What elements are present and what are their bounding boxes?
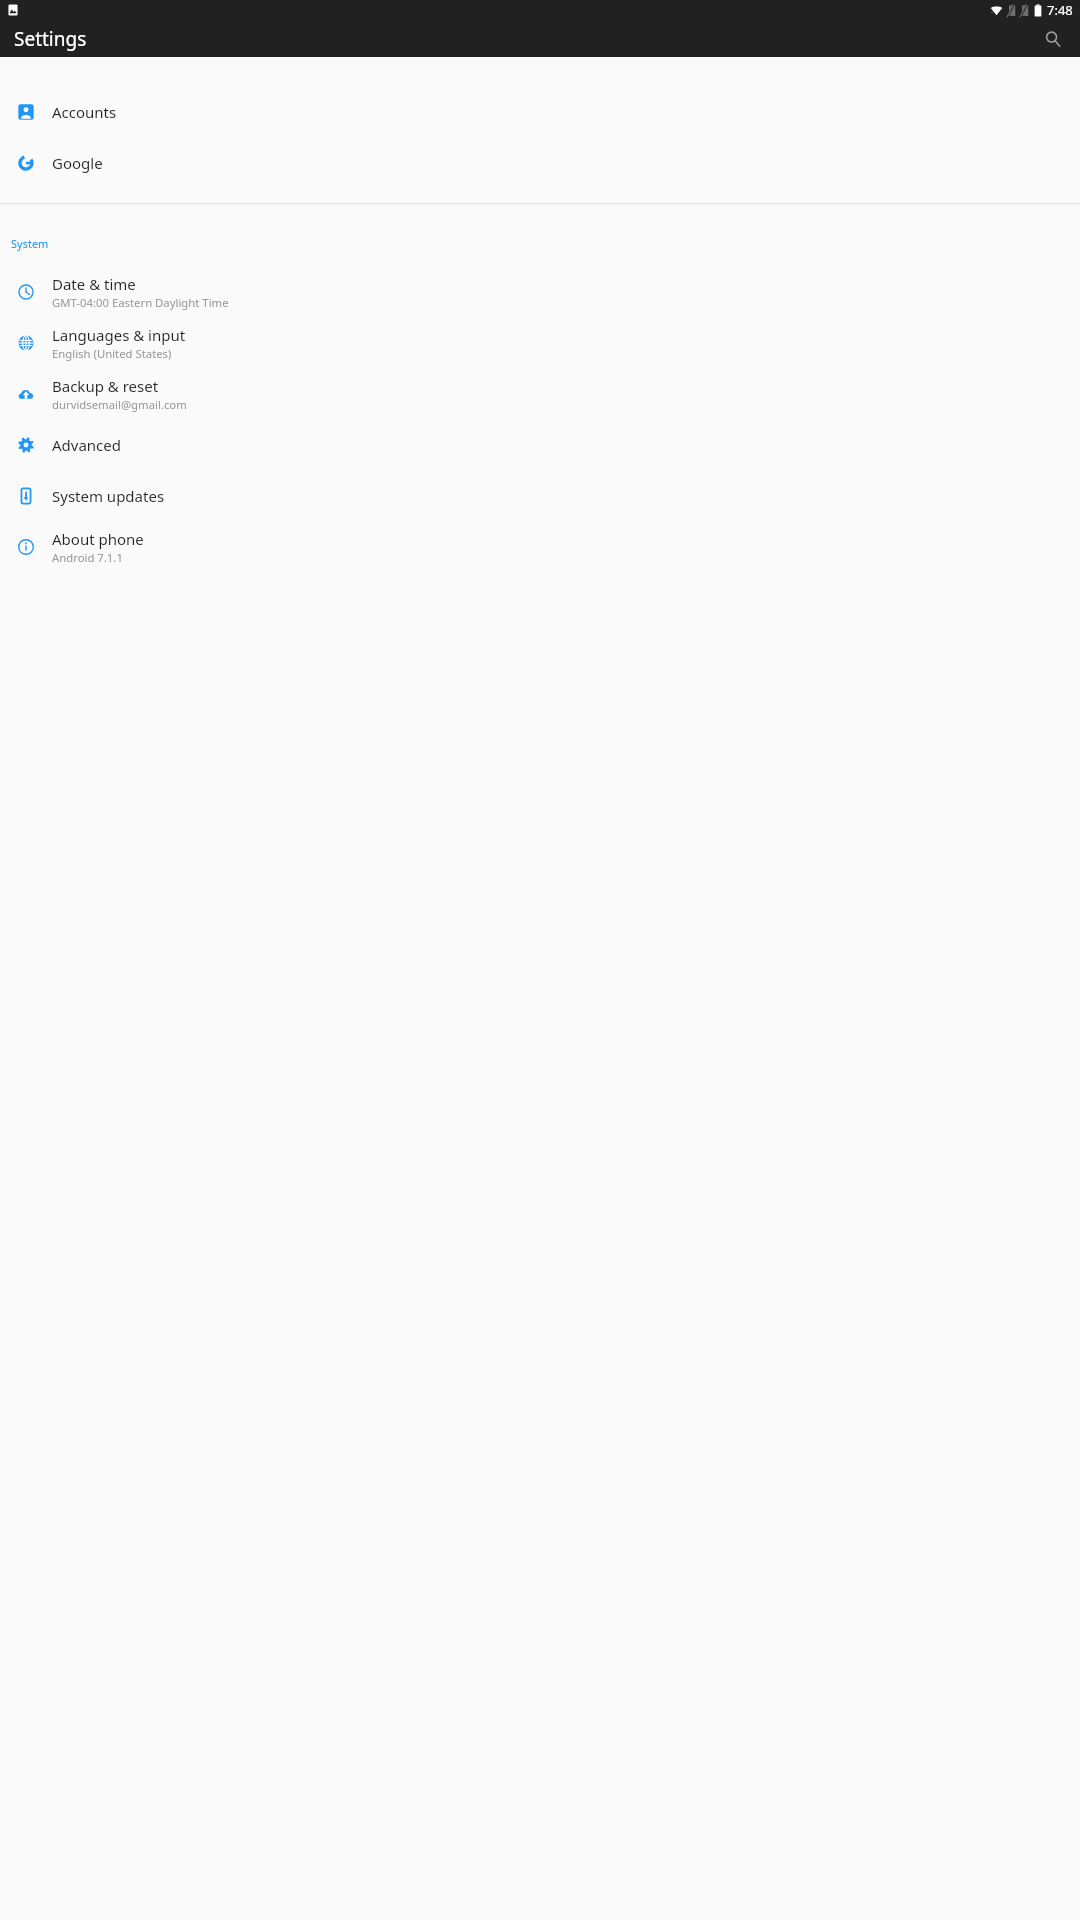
staticText: About phone xyxy=(52,529,144,549)
button[interactable]: Backup & reset xyxy=(0,368,1080,419)
button[interactable]: Date & time xyxy=(0,266,1080,317)
staticText: durvidsemail@gmail.com xyxy=(52,397,187,412)
staticText: GMT-04:00 Eastern Daylight Time xyxy=(52,295,229,310)
staticText: Settings xyxy=(14,26,87,52)
staticText: Android 7.1.1 xyxy=(52,550,123,565)
button[interactable]: Accounts xyxy=(0,86,1080,137)
staticText: Advanced xyxy=(52,435,122,455)
staticText: System xyxy=(11,236,49,251)
button[interactable]: System updates xyxy=(0,470,1080,521)
staticText: 7:48 xyxy=(1047,1,1073,19)
button[interactable]: Google xyxy=(0,137,1080,188)
staticText: English (United States) xyxy=(52,346,172,361)
button[interactable]: Languages & input xyxy=(0,317,1080,368)
button[interactable]: Search xyxy=(1038,24,1068,54)
staticText: System updates xyxy=(52,486,165,506)
staticText: Accounts xyxy=(52,102,117,122)
staticText: Backup & reset xyxy=(52,376,159,396)
button[interactable]: About phone xyxy=(0,521,1080,572)
button[interactable]: Advanced xyxy=(0,419,1080,470)
staticText: Date & time xyxy=(52,274,136,294)
staticText: Languages & input xyxy=(52,325,186,345)
staticText: Google xyxy=(52,153,103,173)
